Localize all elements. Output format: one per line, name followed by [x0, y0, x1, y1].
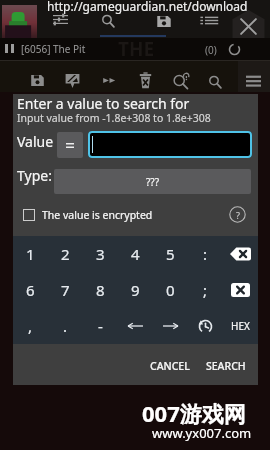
staticText: CANCEL	[150, 359, 190, 373]
staticText: Value	[17, 132, 54, 151]
staticText: SEARCH	[206, 359, 246, 373]
button[interactable]: App icon	[2, 5, 37, 40]
button[interactable]: Help	[229, 206, 246, 223]
staticText: ?	[236, 209, 240, 221]
button[interactable]: Delete	[138, 72, 153, 89]
button[interactable]: 3	[83, 236, 118, 272]
button[interactable]: 1	[13, 236, 48, 272]
staticText: Type:	[17, 166, 52, 185]
button[interactable]: SEARCH	[199, 354, 253, 378]
staticText: ???	[146, 175, 160, 189]
button[interactable]	[88, 131, 252, 158]
staticText: ,	[28, 316, 33, 336]
button[interactable]: Speed hack	[102, 75, 117, 86]
button[interactable]: Bookmarks	[200, 14, 219, 27]
staticText: 7	[61, 280, 70, 300]
button[interactable]: The value is encrypted	[13, 202, 258, 228]
button[interactable]: Search	[208, 74, 223, 89]
staticText: THE	[118, 36, 155, 62]
button[interactable]: 2	[48, 236, 83, 272]
staticText: 9	[131, 280, 140, 300]
button[interactable]: Close	[230, 10, 267, 47]
staticText: (0)	[205, 43, 217, 57]
button[interactable]: HEX	[223, 308, 258, 344]
button[interactable]: :	[188, 236, 223, 272]
staticText: .	[63, 316, 68, 336]
button[interactable]: Menu	[246, 75, 261, 86]
button[interactable]: 7	[48, 272, 83, 308]
staticText: 2	[61, 244, 70, 264]
button[interactable]: 5	[153, 236, 188, 272]
button[interactable]: Load	[65, 73, 80, 88]
button[interactable]: 6	[13, 272, 48, 308]
button[interactable]: Save	[30, 73, 45, 88]
staticText: http://gameguardian.net/download	[47, 0, 248, 14]
button[interactable]	[118, 308, 153, 344]
button[interactable]	[57, 132, 83, 158]
staticText: 0	[166, 280, 175, 300]
staticText: Input value from -1.8e+308 to 1.8e+308	[17, 111, 211, 125]
button[interactable]: 4	[118, 236, 153, 272]
staticText: www.yx007.com	[152, 424, 252, 442]
button[interactable]	[188, 308, 223, 344]
button[interactable]: Search unknown	[172, 73, 190, 90]
button[interactable]: CANCEL	[143, 354, 197, 378]
button[interactable]: Save	[156, 14, 172, 29]
staticText: [6056] The Pit	[21, 42, 86, 56]
button[interactable]	[223, 236, 258, 272]
staticText: -	[98, 316, 103, 336]
staticText: 3	[96, 244, 105, 264]
button[interactable]: ???	[54, 169, 251, 194]
button[interactable]: .	[48, 308, 83, 344]
staticText: Enter a value to search for	[17, 94, 190, 113]
staticText: 5	[166, 244, 175, 264]
staticText: ;	[203, 280, 208, 300]
button[interactable]: 8	[83, 272, 118, 308]
button[interactable]: -	[83, 308, 118, 344]
button[interactable]: ,	[13, 308, 48, 344]
staticText: 6	[26, 280, 35, 300]
button[interactable]: 9	[118, 272, 153, 308]
staticText: The value is encrypted	[42, 208, 153, 222]
staticText: :	[203, 244, 208, 264]
staticText: 1	[26, 244, 35, 264]
button[interactable]	[223, 272, 258, 308]
button[interactable]	[153, 308, 188, 344]
button[interactable]: Filters	[53, 12, 68, 27]
button[interactable]: Search page	[101, 13, 116, 28]
staticText: 4	[131, 244, 140, 264]
button[interactable]: 0	[153, 272, 188, 308]
staticText: 8	[96, 280, 105, 300]
staticText: HEX	[231, 319, 250, 333]
staticText: 007游戏网	[142, 398, 246, 428]
button[interactable]: Refresh	[227, 42, 242, 57]
button[interactable]: ;	[188, 272, 223, 308]
